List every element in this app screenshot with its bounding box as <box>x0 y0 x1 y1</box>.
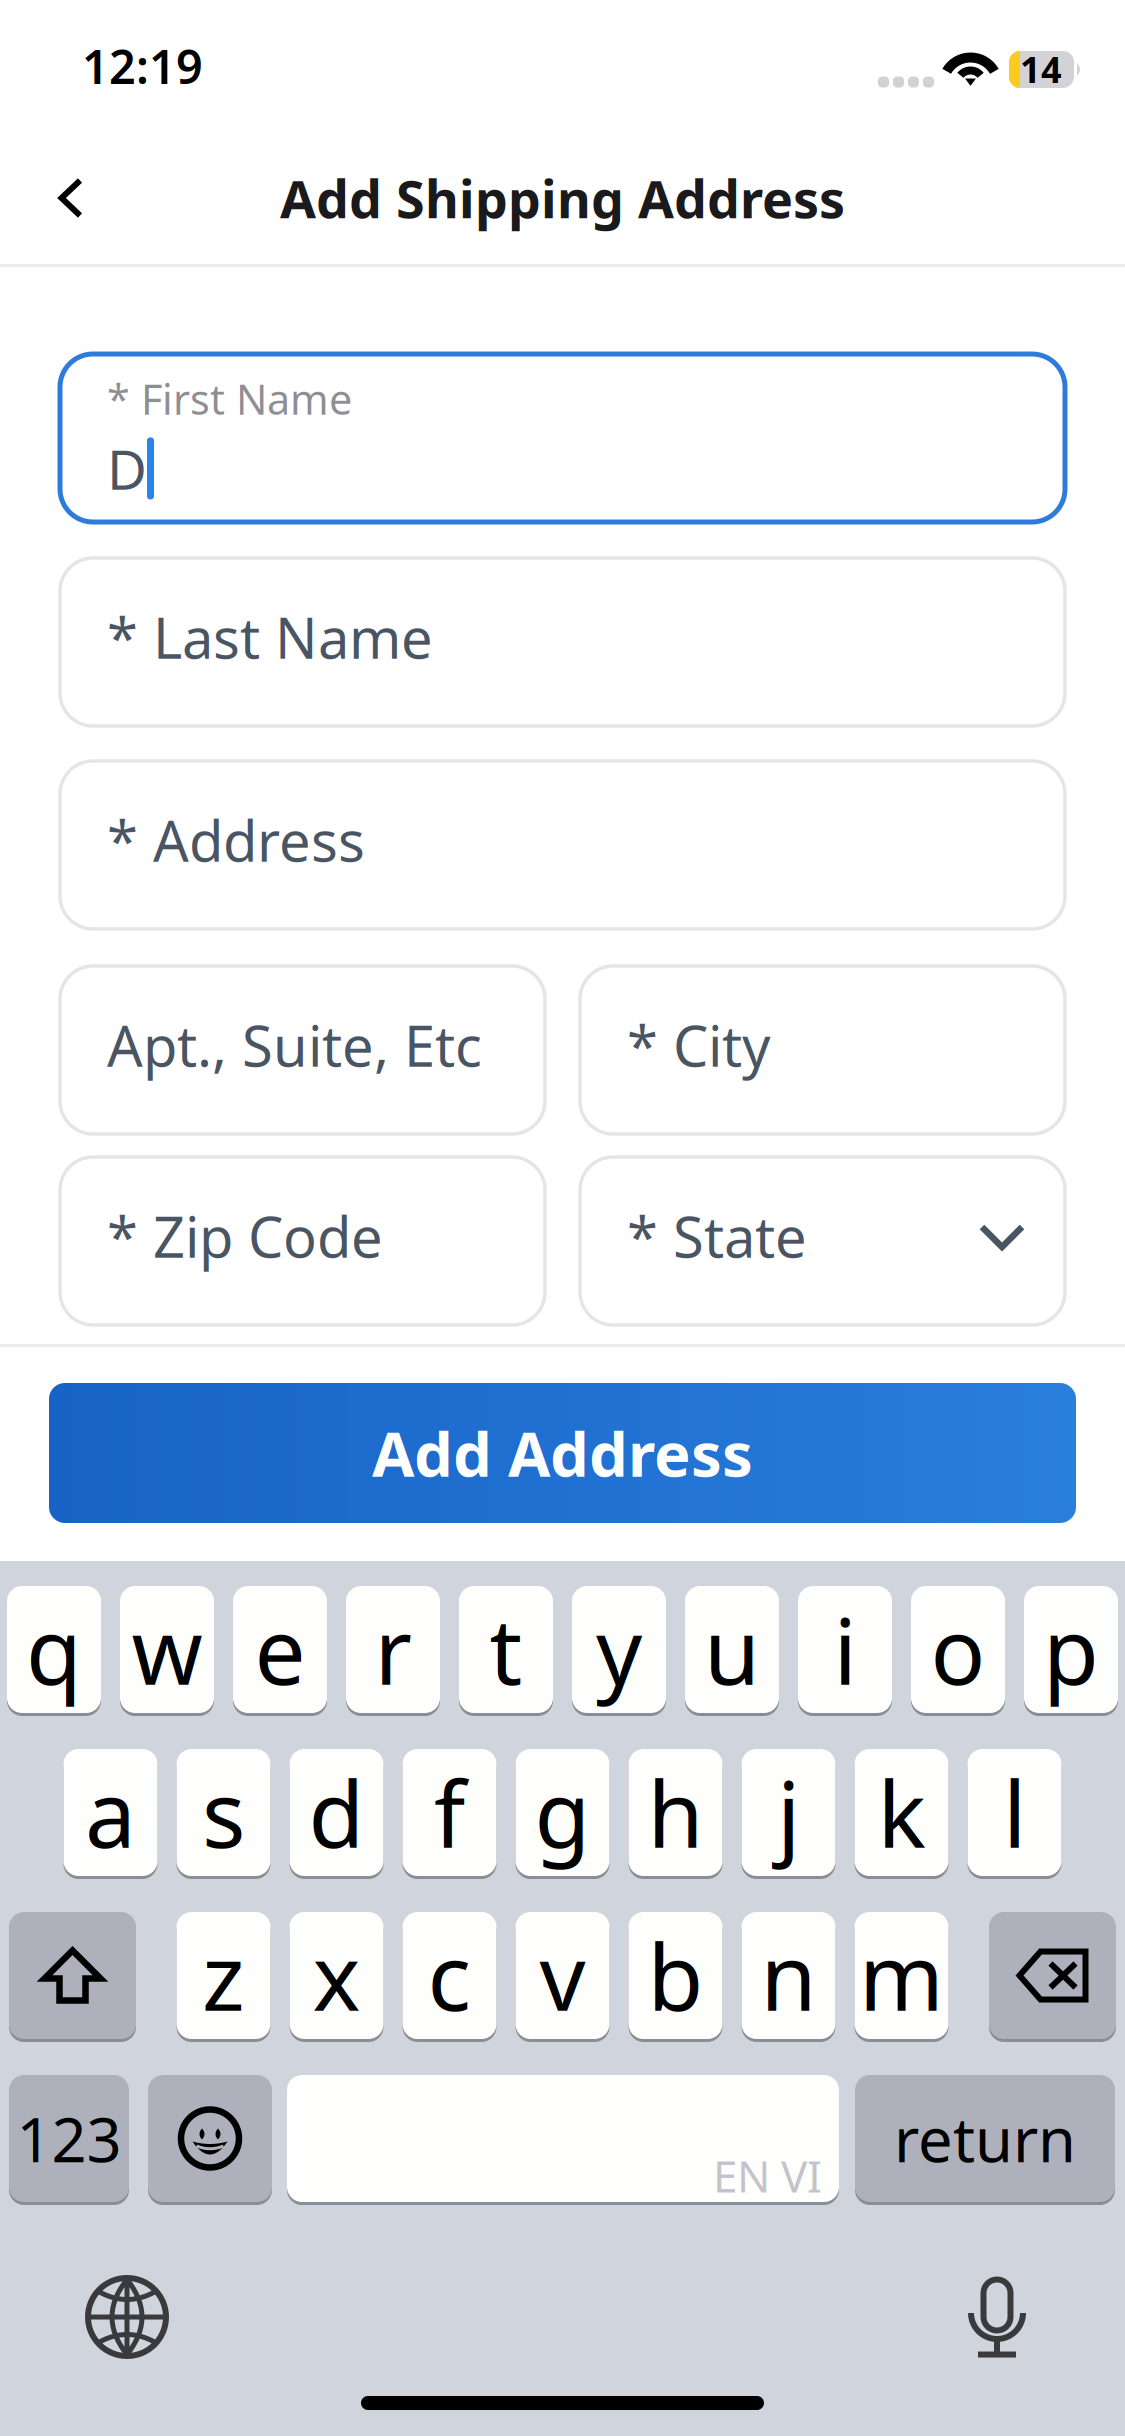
button[interactable]: * Address <box>60 761 1065 929</box>
staticText: * City <box>627 1008 771 1082</box>
button[interactable]: k <box>854 1749 948 1876</box>
button[interactable]: Space <box>287 2075 839 2202</box>
button[interactable]: l <box>967 1749 1061 1876</box>
staticText: g <box>534 1752 590 1873</box>
staticText: * Address <box>107 803 365 877</box>
button[interactable]: y <box>572 1586 666 1713</box>
button[interactable]: x <box>289 1912 383 2039</box>
staticText: EN VI <box>713 2146 822 2205</box>
button[interactable]: d <box>289 1749 383 1876</box>
button[interactable]: r <box>346 1586 440 1713</box>
button[interactable]: Shift <box>9 1912 136 2039</box>
button[interactable]: u <box>685 1586 779 1713</box>
button[interactable]: e <box>233 1586 327 1713</box>
staticText: p <box>1043 1589 1099 1710</box>
staticText: * First Name <box>107 371 352 426</box>
staticText: o <box>930 1589 985 1710</box>
button[interactable]: j <box>741 1749 835 1876</box>
button[interactable]: Dictation <box>954 2260 1040 2374</box>
staticText: s <box>202 1752 245 1873</box>
button[interactable]: g <box>515 1749 609 1876</box>
button[interactable]: Apt., Suite, Etc <box>60 966 545 1134</box>
button[interactable]: w <box>120 1586 214 1713</box>
button[interactable]: Next keyboard <box>71 2261 183 2373</box>
button[interactable]: Add Address <box>49 1383 1076 1523</box>
button[interactable]: * First Name <box>60 354 1065 522</box>
staticText: i <box>833 1589 856 1710</box>
staticText: l <box>1003 1752 1026 1873</box>
staticText: j <box>777 1752 800 1873</box>
button[interactable]: i <box>798 1586 892 1713</box>
staticText: D <box>107 432 147 505</box>
staticText: 12:19 <box>82 35 203 97</box>
button[interactable]: n <box>741 1912 835 2039</box>
button[interactable]: * Last Name <box>60 558 1065 726</box>
staticText: x <box>312 1915 360 2036</box>
button[interactable]: Emoji <box>148 2075 272 2202</box>
button[interactable]: Delete <box>989 1912 1116 2039</box>
staticText: Add Shipping Address <box>280 163 845 233</box>
button[interactable]: v <box>515 1912 609 2039</box>
button[interactable]: * State <box>580 1157 1065 1325</box>
staticText: e <box>254 1589 305 1710</box>
staticText: c <box>427 1915 471 2036</box>
staticText: return <box>894 2098 1076 2179</box>
button[interactable]: q <box>7 1586 101 1713</box>
staticText: v <box>539 1915 585 2036</box>
button[interactable]: m <box>854 1912 948 2039</box>
staticText: 14 <box>1020 45 1062 93</box>
button[interactable]: s <box>176 1749 270 1876</box>
staticText: b <box>647 1915 703 2036</box>
button[interactable]: b <box>628 1912 722 2039</box>
staticText: q <box>26 1589 82 1710</box>
button[interactable]: t <box>459 1586 553 1713</box>
button[interactable]: h <box>628 1749 722 1876</box>
staticText: f <box>434 1752 465 1873</box>
button[interactable]: z <box>176 1912 270 2039</box>
staticText: z <box>202 1915 245 2036</box>
button[interactable]: a <box>63 1749 157 1876</box>
staticText: * State <box>627 1199 807 1273</box>
button[interactable]: * Zip Code <box>60 1157 545 1325</box>
button[interactable]: * City <box>580 966 1065 1134</box>
staticText: y <box>596 1589 642 1710</box>
staticText: d <box>308 1752 364 1873</box>
staticText: a <box>85 1752 136 1873</box>
staticText: n <box>760 1915 816 2036</box>
staticText: k <box>877 1752 925 1873</box>
staticText: m <box>859 1915 944 2036</box>
staticText: w <box>131 1589 202 1710</box>
button[interactable]: return <box>855 2075 1115 2202</box>
staticText: Add Address <box>372 1412 753 1494</box>
staticText: h <box>647 1752 703 1873</box>
staticText: 123 <box>16 2098 121 2179</box>
staticText: Apt., Suite, Etc <box>107 1008 482 1082</box>
button[interactable]: f <box>402 1749 496 1876</box>
button[interactable]: 123 <box>9 2075 129 2202</box>
button[interactable]: c <box>402 1912 496 2039</box>
staticText: * Last Name <box>107 600 433 674</box>
button[interactable]: p <box>1024 1586 1118 1713</box>
button[interactable]: Back <box>24 134 118 262</box>
staticText: t <box>489 1589 522 1710</box>
staticText: u <box>704 1589 760 1710</box>
staticText: * Zip Code <box>107 1199 383 1273</box>
button[interactable]: o <box>911 1586 1005 1713</box>
staticText: r <box>374 1589 411 1710</box>
